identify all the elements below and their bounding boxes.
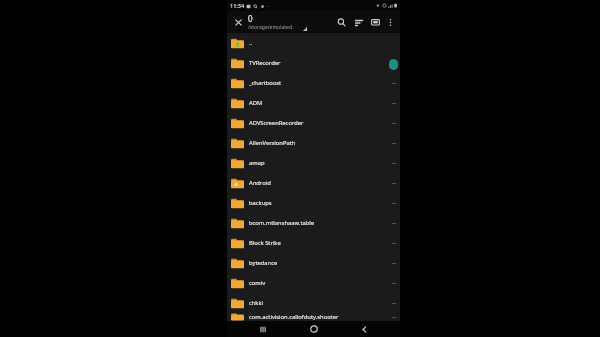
button[interactable]: Block Strike — [227, 233, 400, 253]
button[interactable]: Sort — [350, 14, 367, 31]
staticText: ADM — [249, 99, 392, 107]
staticText: Android — [249, 179, 392, 187]
staticText: — — [392, 280, 397, 286]
staticText: — — [392, 260, 397, 266]
button[interactable]: bytedance — [227, 253, 400, 273]
button[interactable]: amap — [227, 153, 400, 173]
staticText: — — [392, 100, 397, 106]
staticText: — — [392, 220, 397, 226]
button[interactable]: Android — [227, 173, 400, 193]
button[interactable]: 0 — [248, 13, 333, 31]
staticText: — — [392, 200, 397, 206]
button[interactable]: comiv — [227, 273, 400, 293]
staticText: amap — [249, 159, 392, 167]
staticText: chkki — [249, 299, 392, 307]
button[interactable]: Search — [333, 14, 350, 31]
staticText: — — [392, 80, 397, 86]
button[interactable]: ADM — [227, 93, 400, 113]
staticText: _chartboost — [249, 79, 392, 87]
staticText: — — [392, 240, 397, 246]
button[interactable]: bcom.mtlanshaaw.table — [227, 213, 400, 233]
button[interactable]: More options — [384, 16, 397, 29]
staticText: .. — [249, 39, 397, 47]
button[interactable]: backups — [227, 193, 400, 213]
staticText: 0 — [248, 13, 253, 24]
staticText: — — [392, 60, 397, 66]
staticText: — — [392, 180, 397, 186]
staticText: ADVScreenRecorder — [249, 119, 392, 127]
button[interactable]: com.activision.callofduty.shooter — [227, 313, 400, 321]
button[interactable]: TVRecorder — [227, 53, 400, 73]
staticText: — — [392, 140, 397, 146]
button[interactable]: Close — [230, 14, 246, 30]
button[interactable]: .. — [227, 33, 400, 53]
button[interactable]: Back — [349, 321, 379, 337]
staticText: com.activision.callofduty.shooter — [249, 313, 392, 321]
staticText: — — [392, 120, 397, 126]
staticText: 11:34 — [230, 2, 245, 9]
button[interactable]: chkki — [227, 293, 400, 313]
staticText: AllenVersionPath — [249, 139, 392, 147]
staticText: TVRecorder — [249, 59, 392, 67]
staticText: ··· — [267, 3, 271, 9]
button[interactable]: Scroll — [389, 59, 398, 70]
button[interactable]: View mode — [367, 14, 384, 31]
staticText: Block Strike — [249, 239, 392, 247]
button[interactable]: Home — [299, 321, 329, 337]
button[interactable]: AllenVersionPath — [227, 133, 400, 153]
staticText: bcom.mtlanshaaw.table — [249, 219, 392, 227]
button[interactable]: ADVScreenRecorder — [227, 113, 400, 133]
staticText: — — [392, 300, 397, 306]
staticText: /storage/emulated — [248, 24, 292, 31]
button[interactable]: Recents — [248, 321, 278, 337]
staticText: — — [392, 314, 397, 320]
staticText: — — [392, 160, 397, 166]
staticText: bytedance — [249, 259, 392, 267]
button[interactable]: _chartboost — [227, 73, 400, 93]
staticText: comiv — [249, 279, 392, 287]
staticText: backups — [249, 199, 392, 207]
